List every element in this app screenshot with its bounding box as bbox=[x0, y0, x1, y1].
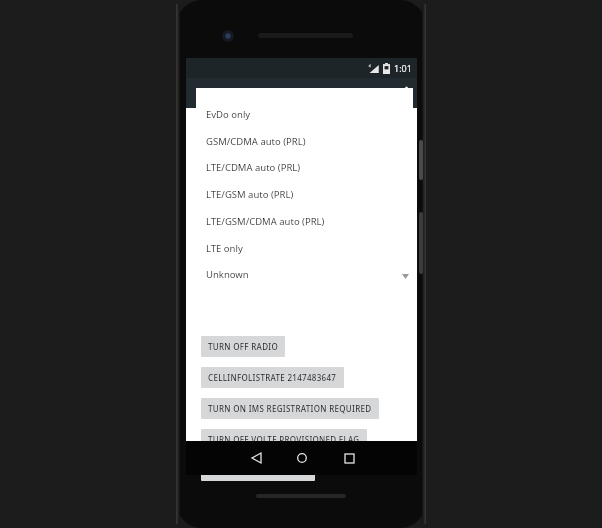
button[interactable]: CELLINFOLISTRATE 2147483647 bbox=[201, 367, 344, 388]
button[interactable]: GSM/CDMA auto (PRL) bbox=[196, 128, 413, 154]
staticText: TURN ON IMS REGISTRATION REQUIRED bbox=[208, 403, 372, 414]
staticText: LTE/GSM auto (PRL) bbox=[206, 188, 294, 201]
button[interactable]: TURN OFF RADIO bbox=[201, 336, 285, 357]
staticText: TURN ON SMS OVER IMS bbox=[208, 465, 308, 476]
button[interactable]: LTE/GSM/CDMA auto (PRL) bbox=[196, 208, 413, 234]
button[interactable]: TURN ON SMS OVER IMS bbox=[201, 460, 315, 481]
staticText: LTE/GSM/CDMA auto (PRL) bbox=[206, 215, 325, 228]
button[interactable]: Unknown bbox=[196, 261, 413, 287]
staticText: LTE/CDMA auto (PRL) bbox=[206, 161, 301, 174]
staticText: TURN OFF RADIO bbox=[208, 341, 278, 352]
staticText: LTE only bbox=[206, 242, 243, 255]
button[interactable]: EvDo only bbox=[196, 101, 413, 127]
button[interactable]: More options bbox=[395, 78, 417, 108]
staticText: CELLINFOLISTRATE 2147483647 bbox=[208, 372, 337, 383]
button[interactable]: Back bbox=[236, 441, 276, 475]
button[interactable]: Home bbox=[282, 441, 322, 475]
staticText: TURN OFF VOLTE PROVISIONED FLAG bbox=[208, 434, 360, 445]
button[interactable]: TURN ON IMS REGISTRATION REQUIRED bbox=[201, 398, 379, 419]
staticText: Phone info bbox=[196, 84, 264, 102]
button[interactable]: LTE only bbox=[196, 235, 413, 261]
staticText: GSM/CDMA auto (PRL) bbox=[206, 135, 306, 148]
staticText: 1:01 bbox=[394, 62, 412, 74]
button[interactable]: LTE/GSM auto (PRL) bbox=[196, 181, 413, 207]
button[interactable]: TURN OFF VOLTE PROVISIONED FLAG bbox=[201, 429, 367, 450]
staticText: Unknown bbox=[206, 268, 249, 281]
staticText: EvDo only bbox=[206, 108, 251, 121]
button[interactable]: Recent apps bbox=[329, 441, 369, 475]
button[interactable]: LTE/CDMA auto (PRL) bbox=[196, 154, 413, 180]
